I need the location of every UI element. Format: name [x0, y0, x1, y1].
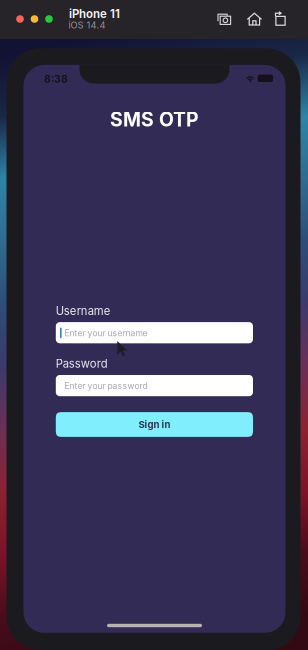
staticText: Enter your password [64, 381, 147, 391]
staticText: iPhone 11 [69, 7, 120, 21]
staticText: iOS 14.4 [68, 20, 105, 31]
button[interactable]: Zoom [45, 15, 53, 23]
staticText: Enter your username [64, 328, 147, 338]
staticText: Password [56, 357, 108, 370]
button[interactable]: Close [16, 15, 24, 23]
button[interactable]: Sign in [56, 412, 253, 437]
staticText: SMS OTP [110, 108, 199, 131]
button[interactable]: Rotate [272, 11, 288, 27]
staticText: 8:38 [44, 73, 68, 85]
button[interactable]: Enter your password [56, 375, 253, 396]
staticText: Sign in [138, 419, 170, 430]
button[interactable]: Screenshot [217, 11, 233, 27]
staticText: Username [56, 304, 111, 318]
button[interactable]: Home [246, 11, 262, 27]
button[interactable]: Minimize [31, 15, 38, 23]
button[interactable]: Enter your username [56, 322, 253, 343]
